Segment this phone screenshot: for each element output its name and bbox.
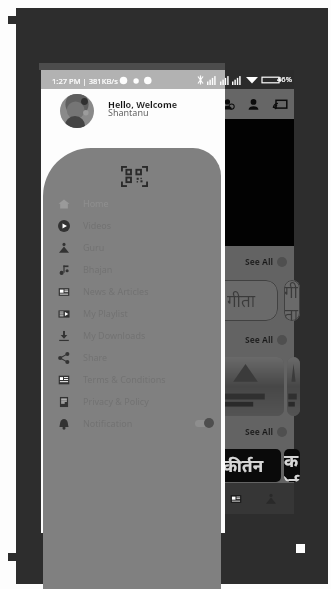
staticText: My Playlist [83, 307, 128, 319]
staticText: र [161, 123, 203, 250]
button[interactable]: कीर्तन [284, 449, 300, 482]
staticText: कीर्तन [223, 454, 264, 477]
button[interactable]: More [260, 488, 282, 510]
button[interactable]: See All [243, 424, 289, 440]
staticText: Videos [83, 219, 112, 231]
staticText: See All [245, 334, 273, 346]
button[interactable]: Search [217, 93, 239, 115]
button[interactable]: See All [243, 254, 289, 270]
button[interactable]: See All [243, 332, 289, 348]
button[interactable]: Home [43, 192, 221, 214]
staticText: Notification [83, 417, 133, 429]
button[interactable]: Terms & Conditions [43, 368, 221, 390]
button[interactable]: कीर्तन [205, 449, 281, 482]
button[interactable]: Cast [269, 93, 291, 115]
staticText: 46% [277, 74, 292, 84]
staticText: 1:27 PM | 381KB/s [52, 76, 118, 86]
button[interactable]: Privacy & Policy [43, 390, 221, 412]
button[interactable]: Profile [242, 93, 264, 115]
button[interactable] [207, 357, 284, 416]
button[interactable]: गीता [284, 280, 300, 321]
button[interactable]: Guru [43, 236, 221, 258]
button[interactable]: My Playlist [43, 302, 221, 324]
staticText: Bhajan [83, 263, 113, 275]
button[interactable] [47, 357, 124, 416]
staticText: Privacy & Policy [83, 395, 149, 407]
staticText: गीता [284, 280, 300, 321]
staticText: My Downloads [83, 329, 146, 341]
staticText: कीर्तन [284, 449, 300, 482]
button[interactable]: My Downloads [43, 324, 221, 346]
staticText: गीता [227, 289, 256, 312]
staticText: Shantanu [108, 106, 149, 118]
button[interactable]: News & Articles [43, 280, 221, 302]
staticText: Share [83, 351, 108, 363]
button[interactable]: गीता [205, 280, 278, 321]
button[interactable]: Videos [43, 214, 221, 236]
button[interactable]: Share [43, 346, 221, 368]
button[interactable] [287, 357, 300, 416]
staticText: Terms & Conditions [83, 373, 166, 385]
staticText: See All [245, 256, 273, 268]
button[interactable]: Notification [43, 412, 221, 434]
staticText: See All [245, 426, 273, 438]
staticText: गीता [69, 289, 98, 312]
staticText: Guru [83, 241, 105, 253]
staticText: Home [83, 197, 109, 209]
staticText: Hello, Welcome [108, 98, 178, 110]
button[interactable]: Bhajan [43, 258, 221, 280]
staticText: News & Articles [83, 285, 149, 297]
button[interactable]: Playlist [225, 488, 247, 510]
button[interactable]: गीता [47, 280, 120, 321]
